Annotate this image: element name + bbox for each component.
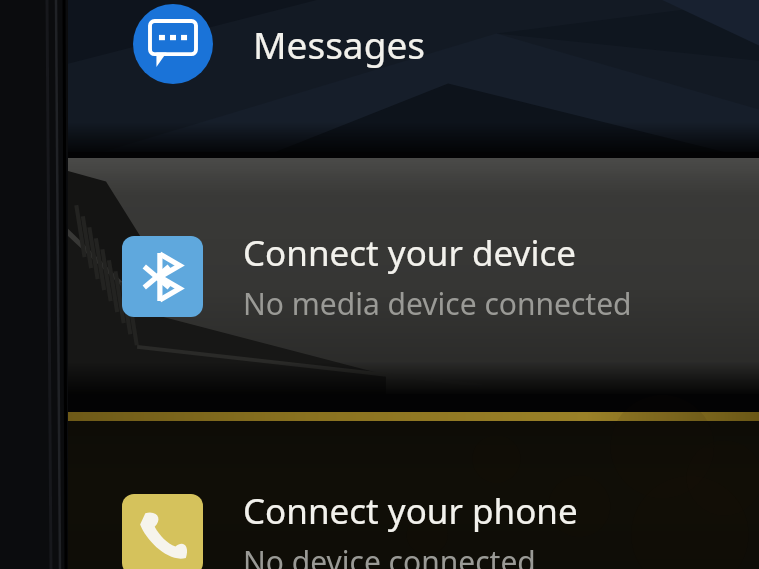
other: Phone [122, 494, 203, 569]
staticText: Connect your device [243, 229, 576, 277]
button[interactable]: Phone [68, 412, 759, 569]
staticText: Messages [253, 19, 425, 69]
staticText: No media device connected [243, 283, 632, 324]
button[interactable]: Bluetooth [68, 158, 759, 394]
button[interactable]: Messages [68, 0, 759, 152]
other: Bluetooth [122, 236, 203, 317]
staticText: No device connected [243, 541, 536, 569]
staticText: Connect your phone [243, 487, 578, 535]
